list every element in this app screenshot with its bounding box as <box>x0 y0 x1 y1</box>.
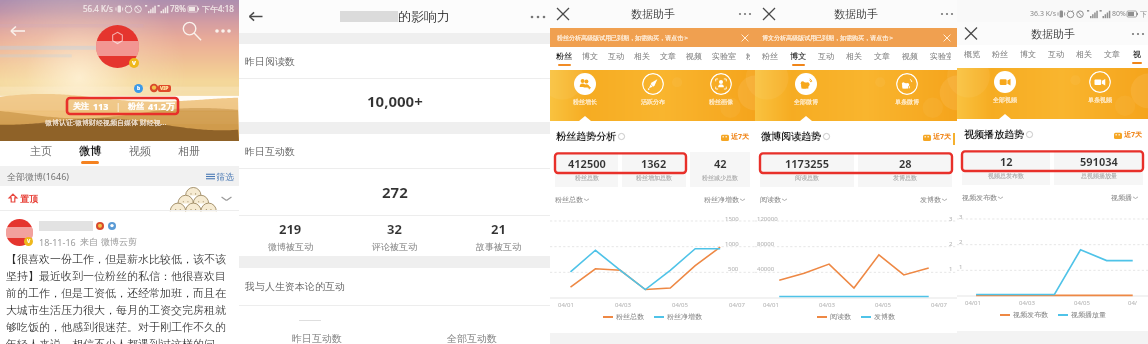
button[interactable]: 互动 <box>1042 45 1070 62</box>
staticText: 04/ <box>1128 299 1138 307</box>
button[interactable]: More options <box>738 7 752 21</box>
staticText: 40000 <box>757 265 775 273</box>
staticText: 1 <box>949 265 953 273</box>
button[interactable]: 视频发布数 <box>962 193 1003 202</box>
button[interactable]: 实验室 <box>707 47 741 64</box>
staticText: 32 <box>387 220 402 238</box>
button[interactable]: More options <box>529 8 547 26</box>
button[interactable]: 博文 <box>784 47 812 66</box>
button[interactable]: 12 <box>962 150 1050 185</box>
button[interactable]: 互动 <box>812 47 840 64</box>
button[interactable]: 视频 <box>681 47 707 64</box>
button[interactable]: 关注 <box>67 98 178 114</box>
button[interactable]: 28 <box>858 152 952 187</box>
button[interactable]: 微博 <box>75 141 105 164</box>
button[interactable]: 粉丝增长 <box>550 73 619 106</box>
button[interactable]: 视频 <box>896 47 924 64</box>
button[interactable]: 博文 <box>577 47 603 64</box>
button[interactable]: Close <box>758 0 780 28</box>
staticText: 我与人生资本论的互动 <box>245 280 345 293</box>
staticText: 粉丝总数 <box>575 174 599 182</box>
staticText: 粉丝增长 <box>573 98 597 106</box>
staticText: 文章 <box>1104 49 1120 59</box>
button[interactable]: More options <box>211 19 235 43</box>
staticText: 视频播 <box>1111 193 1132 202</box>
staticText: 粉丝减少总数 <box>702 174 738 182</box>
staticText: 单条微博 <box>895 98 919 106</box>
button[interactable]: Dismiss <box>942 33 952 43</box>
button[interactable]: 相册 <box>174 141 204 161</box>
button[interactable]: Avatar <box>96 25 139 68</box>
staticText: 博文 <box>1020 49 1036 59</box>
staticText: 置顶 <box>20 193 38 204</box>
staticText: 单条视频 <box>1088 96 1112 104</box>
button[interactable]: 视 <box>1126 45 1148 64</box>
button[interactable]: 筛选 <box>206 171 234 182</box>
button[interactable]: 1362 <box>622 152 686 187</box>
staticText: 全部微博(1646) <box>7 170 69 182</box>
staticText: 1000 <box>725 240 739 248</box>
button[interactable]: 阅读数 <box>760 195 787 204</box>
staticText: 视频 <box>902 51 918 61</box>
button[interactable]: Back <box>6 19 30 43</box>
button[interactable]: 活跃分布 <box>619 73 687 106</box>
button[interactable]: 单条视频 <box>1052 71 1148 104</box>
button[interactable]: 42 <box>690 152 750 187</box>
button[interactable]: 1173255 <box>760 152 854 187</box>
button[interactable]: 文章 <box>1098 45 1126 62</box>
staticText: 28 <box>899 156 912 171</box>
button[interactable]: 粉丝净增数 <box>704 195 745 204</box>
button[interactable]: Search <box>179 19 203 43</box>
button[interactable]: 博文 <box>1014 45 1042 62</box>
button[interactable]: 32 <box>342 216 446 256</box>
staticText: 数据助手 <box>631 7 675 21</box>
staticText: 500 <box>728 265 739 273</box>
button[interactable]: 粉丝总数 <box>555 195 589 204</box>
button[interactable]: 单条微博 <box>856 73 957 106</box>
staticText: 1362 <box>641 156 667 171</box>
button[interactable]: 粉丝 <box>551 47 577 66</box>
button[interactable]: 置顶 <box>0 186 239 210</box>
staticText: 21 <box>491 220 506 238</box>
staticText: 阅读数 <box>760 195 781 204</box>
button[interactable]: 近7天 <box>923 132 952 142</box>
button[interactable]: 近7天 <box>721 132 750 142</box>
staticText: 故事被互动 <box>476 241 521 252</box>
button[interactable]: 粉丝 <box>986 45 1014 62</box>
button[interactable]: 视频播 <box>1111 193 1138 202</box>
button[interactable]: 视频 <box>125 141 155 161</box>
button[interactable]: 相关 <box>629 47 655 64</box>
button[interactable]: 实验室 <box>924 47 957 64</box>
button[interactable]: 近7天 <box>1114 130 1143 140</box>
staticText: 粉丝总数 <box>616 312 644 321</box>
staticText: 总视频播放量 <box>1081 172 1117 180</box>
staticText: 80% <box>1112 9 1126 19</box>
button[interactable]: 互动 <box>603 47 629 64</box>
button[interactable]: 412500 <box>555 152 618 187</box>
staticText: 3 <box>959 213 963 221</box>
button[interactable]: 21 <box>446 216 550 256</box>
button[interactable]: 591034 <box>1054 150 1143 185</box>
button[interactable]: 219 <box>239 216 342 256</box>
button[interactable]: 粉 <box>741 47 755 64</box>
button[interactable]: 发博数 <box>920 195 947 204</box>
button[interactable]: Dismiss <box>740 33 750 43</box>
button[interactable]: Close <box>552 0 574 28</box>
button[interactable]: 粉丝画像 <box>687 73 755 106</box>
button[interactable]: 全部微博 <box>755 73 856 106</box>
button[interactable]: 全部视频 <box>957 71 1052 104</box>
button[interactable]: Close <box>960 22 982 45</box>
staticText: 博文 <box>582 51 598 61</box>
button[interactable]: More options <box>1131 27 1145 41</box>
button[interactable]: 相关 <box>1070 45 1098 62</box>
button[interactable]: More options <box>940 7 954 21</box>
staticText: 活跃分布 <box>641 98 665 106</box>
button[interactable]: 概览 <box>958 45 986 62</box>
button[interactable]: 文章 <box>655 47 681 64</box>
button[interactable]: Back <box>243 0 269 33</box>
button[interactable]: 相关 <box>840 47 868 64</box>
button[interactable]: 文章 <box>868 47 896 64</box>
button[interactable]: 粉丝 <box>756 47 784 64</box>
button[interactable]: 主页 <box>26 141 56 161</box>
staticText: 粉丝净增数 <box>667 312 702 321</box>
